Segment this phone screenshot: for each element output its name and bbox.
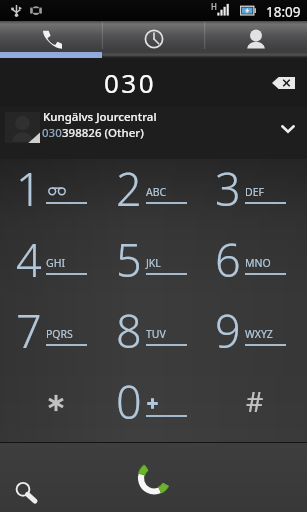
button[interactable]: 9 <box>203 301 303 372</box>
button[interactable]: Contacts tab <box>205 21 307 58</box>
staticText: WXYZ <box>245 327 273 341</box>
staticText: 2 <box>116 158 142 219</box>
staticText: 4 <box>16 229 42 290</box>
button[interactable]: Backspace <box>260 58 307 107</box>
staticText: 9 <box>215 300 241 361</box>
button[interactable]: 8 <box>104 301 204 372</box>
staticText: # <box>246 383 264 420</box>
button[interactable]: Call <box>120 443 188 512</box>
button[interactable] <box>4 372 104 443</box>
button[interactable]: 5 <box>104 230 204 301</box>
button[interactable]: Show more <box>263 107 307 159</box>
staticText: DEF <box>245 185 264 199</box>
staticText: 1 <box>16 158 42 219</box>
staticText: 5 <box>116 229 142 290</box>
staticText: JKL <box>146 256 161 270</box>
button[interactable]: Dialer tab <box>0 21 103 58</box>
staticText: ABC <box>146 185 167 199</box>
button[interactable]: 1 <box>4 159 104 230</box>
button[interactable]: 7 <box>4 301 104 372</box>
staticText: 6 <box>215 229 241 290</box>
button[interactable]: 030 <box>0 58 307 107</box>
staticText: 7 <box>16 300 42 361</box>
staticText: PQRS <box>46 327 73 341</box>
staticText: MNO <box>245 256 271 270</box>
staticText: TUV <box>146 327 166 341</box>
staticText: 030 <box>42 125 62 141</box>
staticText: 398826 (Other) <box>62 125 144 141</box>
button[interactable]: 2 <box>104 159 204 230</box>
button[interactable]: 6 <box>203 230 303 301</box>
button[interactable]: 3 <box>203 159 303 230</box>
staticText: H <box>211 1 217 12</box>
button[interactable]: 4 <box>4 230 104 301</box>
staticText: 3 <box>215 158 241 219</box>
staticText: Kungälvs Jourcentral <box>43 109 157 125</box>
staticText: 030 <box>0 65 260 100</box>
button[interactable]: # <box>203 372 303 443</box>
staticText: GHI <box>46 256 65 270</box>
staticText: 8 <box>116 300 142 361</box>
staticText: 18:09 <box>266 3 301 21</box>
staticText: 0 <box>116 371 142 432</box>
button[interactable]: Kungälvs Jourcentral <box>0 107 307 159</box>
button[interactable]: Search <box>0 443 80 512</box>
button[interactable]: 0 <box>104 372 204 443</box>
button[interactable]: Call log tab <box>103 21 205 58</box>
